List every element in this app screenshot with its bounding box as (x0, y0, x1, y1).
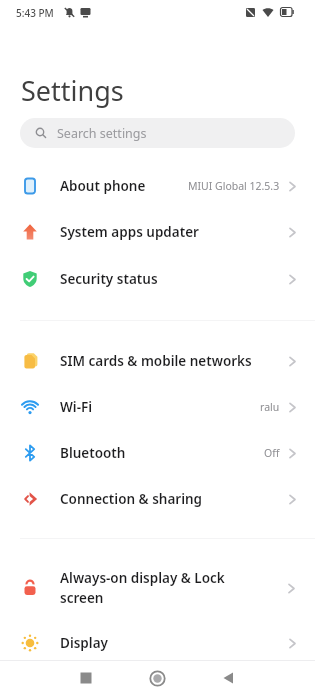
staticText: Settings (21, 72, 124, 109)
button[interactable] (222, 672, 234, 684)
button[interactable]: Wi-Fi (0, 384, 315, 430)
staticText: Always-on display & Lock screen (60, 569, 225, 607)
button[interactable]: Display (0, 620, 315, 666)
button[interactable]: Always-on display & Lock screen (0, 560, 315, 616)
staticText: Search settings (57, 125, 147, 142)
staticText: MIUI Global 12.5.3 (188, 179, 280, 193)
button[interactable]: System apps updater (0, 209, 315, 255)
button[interactable]: About phone (0, 163, 315, 209)
button[interactable] (80, 672, 92, 684)
staticText: About phone (60, 177, 146, 195)
staticText: Wi-Fi (60, 398, 93, 416)
staticText: Connection & sharing (60, 490, 203, 508)
staticText: System apps updater (60, 223, 199, 241)
staticText: ralu (260, 400, 280, 414)
staticText: SIM cards & mobile networks (60, 352, 252, 370)
button[interactable]: Connection & sharing (0, 476, 315, 522)
button[interactable] (149, 670, 166, 687)
staticText: Display (60, 634, 108, 652)
button[interactable]: Bluetooth (0, 430, 315, 476)
staticText: 5:43 PM (16, 6, 54, 20)
staticText: Off (264, 446, 280, 460)
button[interactable]: Search settings (20, 118, 295, 148)
staticText: Bluetooth (60, 444, 126, 462)
button[interactable]: SIM cards & mobile networks (0, 338, 315, 384)
button[interactable]: Security status (0, 256, 315, 302)
staticText: Security status (60, 270, 158, 288)
